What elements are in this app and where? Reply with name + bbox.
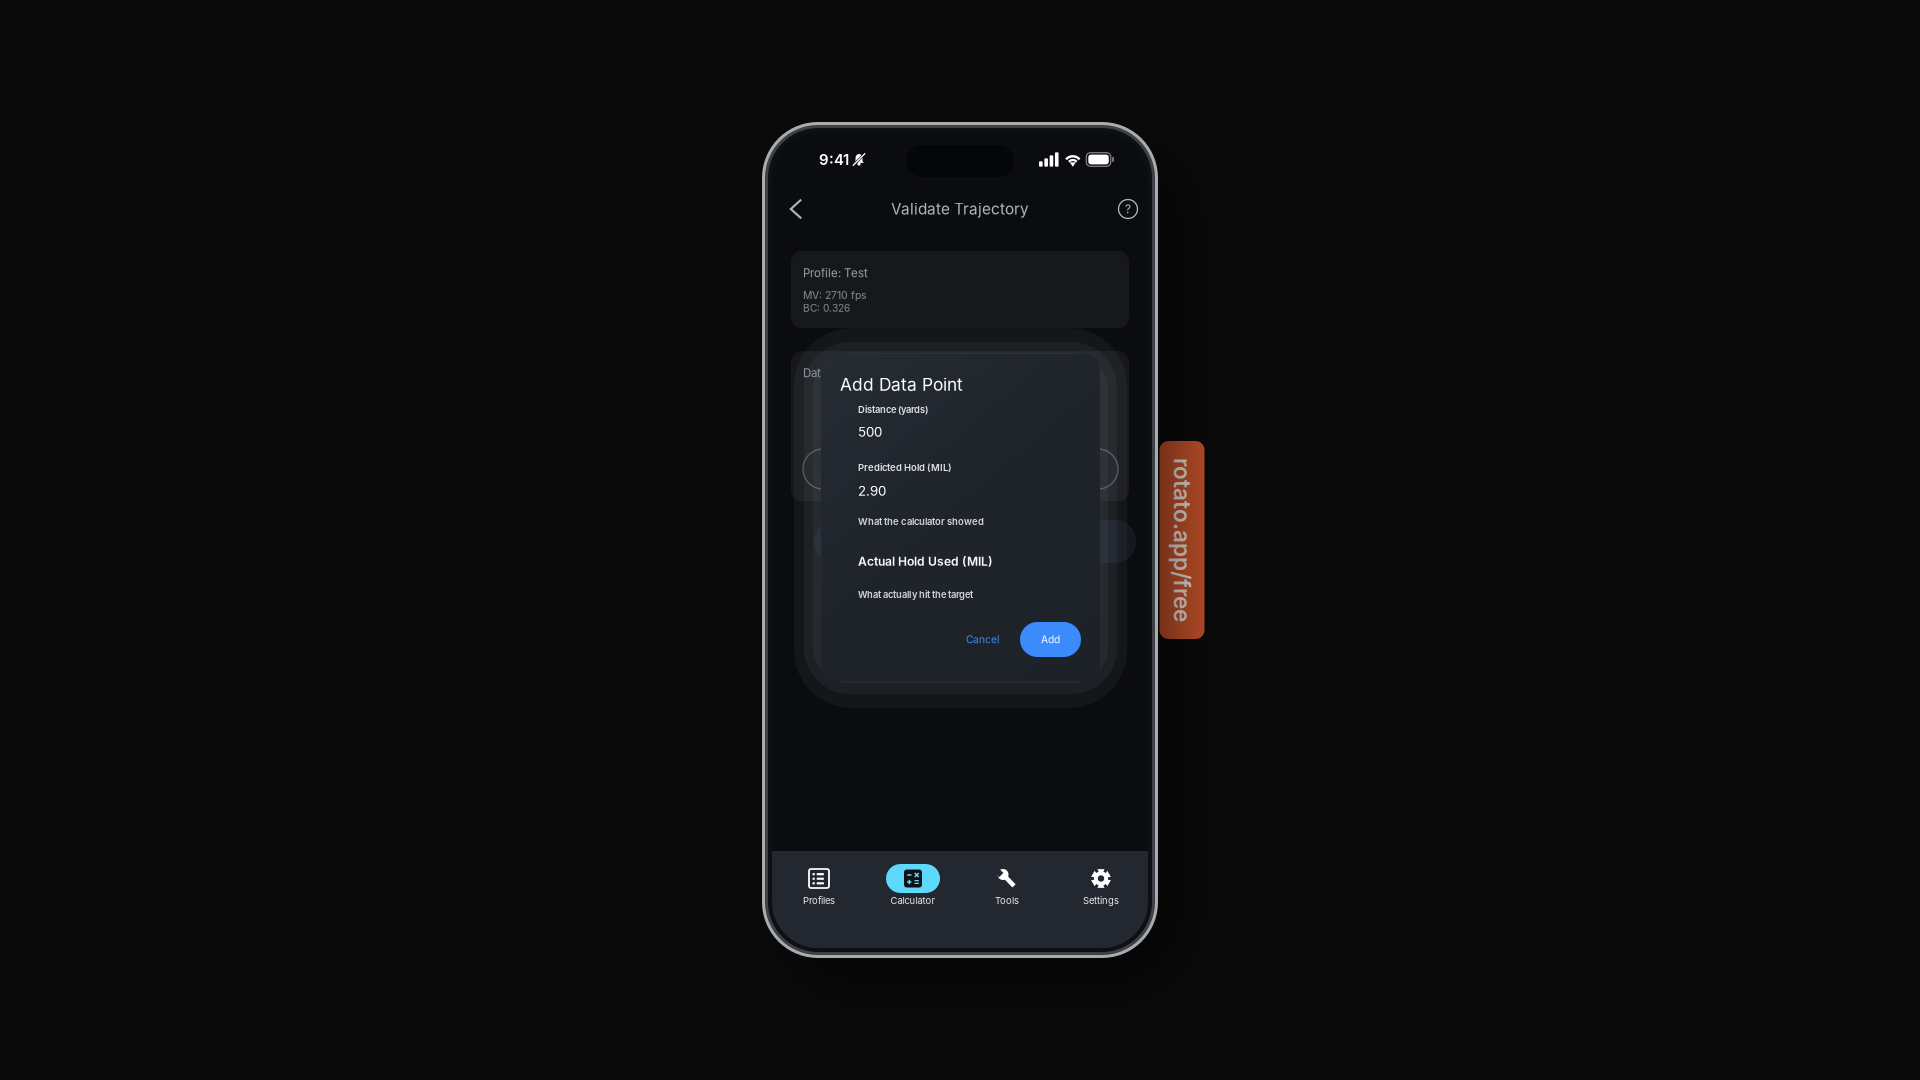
staticText: Add (1041, 633, 1060, 646)
button[interactable]: Add (1020, 622, 1081, 657)
button[interactable]: Back (775, 188, 817, 230)
staticText: MV: 2710 fps (803, 289, 866, 302)
staticText: Actual Hold Used (MIL) (858, 554, 993, 569)
staticText: BC: 0.326 (803, 302, 850, 314)
staticText: What actually hit the target (858, 589, 973, 600)
staticText: What the calculator showed (858, 516, 984, 527)
staticText: Predicted Hold (MIL) (858, 462, 952, 473)
staticText: Cancel (966, 633, 999, 646)
button[interactable]: Cancel (957, 622, 1008, 657)
button[interactable]: Help (1107, 188, 1149, 230)
button[interactable]: Settings (1054, 864, 1148, 906)
staticText: Settings (1083, 895, 1119, 906)
staticText: Data Points (803, 366, 864, 380)
button[interactable]: Calculator (866, 864, 960, 906)
staticText: ? (1125, 202, 1131, 216)
staticText: 9:41 (819, 150, 849, 168)
staticText: 500 (858, 424, 882, 440)
staticText: Add Data Point (840, 374, 963, 395)
staticText: Validate Trajectory (891, 200, 1029, 218)
staticText: 2.90 (858, 483, 886, 499)
button[interactable]: Profiles (772, 864, 866, 906)
staticText: Tools (995, 895, 1019, 906)
staticText: Profiles (803, 895, 835, 906)
staticText: rotato.app/free (1100, 526, 1264, 554)
staticText: Calculator (890, 895, 935, 906)
button[interactable]: Tools (960, 864, 1054, 906)
staticText: Distance (yards) (858, 404, 928, 415)
staticText: Profile: Test (803, 266, 868, 280)
